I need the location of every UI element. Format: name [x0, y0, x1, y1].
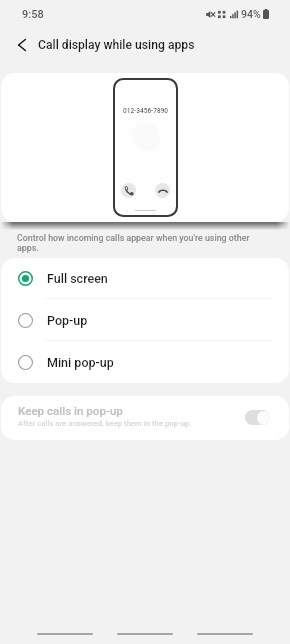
staticText: Call display while using apps: [38, 38, 195, 52]
staticText: 94%: [241, 8, 261, 20]
button[interactable]: Back: [197, 626, 253, 642]
staticText: After calls are answered, keep them in t…: [18, 419, 192, 428]
button[interactable]: Full screen: [1, 258, 289, 299]
staticText: 9:58: [22, 8, 44, 21]
button[interactable]: Mini pop-up: [1, 341, 289, 383]
staticText: Mini pop-up: [47, 355, 114, 370]
staticText: 012-3456-7890: [123, 107, 169, 115]
staticText: Keep calls in pop-up: [18, 404, 123, 418]
button[interactable]: Keep calls in pop-up: [1, 396, 289, 440]
button[interactable]: Recents: [37, 626, 93, 642]
button[interactable]: Pop-up: [1, 299, 289, 341]
staticText: Pop-up: [47, 313, 88, 328]
button[interactable]: Navigate up: [8, 31, 36, 59]
staticText: Full screen: [47, 271, 108, 286]
staticText: Control how incoming calls appear when y…: [17, 233, 260, 254]
button[interactable]: Home: [117, 626, 173, 642]
